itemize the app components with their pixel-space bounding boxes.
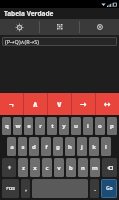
staticText: z — [22, 164, 25, 172]
staticText: j — [81, 143, 83, 151]
staticText: ?123 — [6, 186, 15, 191]
staticText: l — [105, 143, 107, 151]
button[interactable]: e — [24, 117, 33, 135]
button[interactable]: h — [65, 137, 75, 156]
staticText: ∧ — [32, 100, 39, 109]
button[interactable]: ∧ — [24, 93, 47, 115]
button[interactable]: (P→Q)∧(R→S) — [2, 37, 117, 46]
button[interactable]: k — [89, 137, 99, 156]
staticText: (P→Q)∧(R→S) — [5, 38, 39, 45]
button[interactable]: x — [30, 158, 40, 177]
staticText: w — [15, 122, 21, 130]
button[interactable]: ↔ — [96, 93, 119, 115]
button[interactable]: b — [66, 158, 76, 177]
staticText: c — [45, 164, 49, 172]
staticText: Go — [106, 185, 113, 192]
button[interactable]: . — [90, 179, 99, 198]
staticText: n — [81, 164, 85, 172]
staticText: → — [80, 100, 87, 109]
staticText: ↔ — [104, 100, 111, 109]
button[interactable]: d — [29, 137, 39, 156]
staticText: x — [33, 164, 37, 172]
button[interactable]: Grade — [40, 19, 79, 35]
button[interactable]: → — [72, 93, 95, 115]
button[interactable]: z — [18, 158, 28, 177]
button[interactable]: y — [59, 117, 69, 135]
staticText: f — [45, 143, 48, 151]
button[interactable]: ∨ — [48, 93, 71, 115]
button[interactable]: r — [35, 117, 45, 135]
button[interactable]: o — [95, 117, 105, 135]
button[interactable]: Shift — [2, 158, 16, 177]
button[interactable]: n — [78, 158, 88, 177]
button[interactable]: a — [7, 137, 16, 156]
staticText: Tabela Verdade — [4, 9, 54, 18]
button[interactable]: ¬ — [0, 93, 23, 115]
button[interactable]: u — [71, 117, 81, 135]
button[interactable]: , — [21, 179, 30, 198]
staticText: r — [39, 122, 42, 130]
staticText: s — [21, 143, 25, 151]
staticText: y — [62, 122, 66, 130]
button[interactable]: q — [2, 117, 11, 135]
button[interactable]: s — [18, 137, 27, 156]
staticText: u — [74, 122, 78, 130]
staticText: i — [87, 122, 89, 130]
staticText: o — [98, 122, 102, 130]
button[interactable]: g — [53, 137, 63, 156]
staticText: q — [5, 122, 9, 130]
button[interactable]: j — [77, 137, 87, 156]
button[interactable]: f — [41, 137, 51, 156]
button[interactable]: Informação — [80, 19, 119, 35]
button[interactable]: v — [54, 158, 64, 177]
button[interactable]: w — [13, 117, 22, 135]
button[interactable]: ?123 — [2, 179, 19, 198]
button[interactable]: i — [83, 117, 93, 135]
staticText: k — [92, 143, 96, 151]
staticText: e — [27, 122, 31, 130]
staticText: ∨ — [56, 100, 63, 109]
button[interactable]: c — [42, 158, 52, 177]
button[interactable]: t — [47, 117, 57, 135]
button[interactable]: Go — [101, 179, 117, 198]
staticText: m — [92, 164, 98, 172]
button[interactable]: l — [101, 137, 111, 156]
button[interactable]: m — [90, 158, 100, 177]
staticText: p — [110, 122, 114, 130]
staticText: . — [94, 185, 96, 193]
staticText: t — [51, 122, 54, 130]
staticText: g — [56, 143, 60, 151]
button[interactable]: Backspace — [102, 158, 117, 177]
staticText: a — [10, 143, 14, 151]
staticText: v — [57, 164, 61, 172]
staticText: , — [25, 185, 27, 193]
staticText: b — [69, 164, 73, 172]
button[interactable]: Tabela — [0, 19, 39, 35]
button[interactable]: p — [107, 117, 117, 135]
staticText: h — [68, 143, 72, 151]
staticText: ¬ — [9, 99, 14, 110]
staticText: d — [32, 143, 36, 151]
